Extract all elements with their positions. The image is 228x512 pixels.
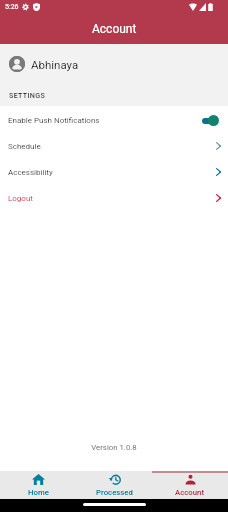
- staticText: Abhinaya: [31, 58, 79, 71]
- staticText: Schedule: [8, 142, 41, 151]
- button[interactable]: Enable Push Notifications: [0, 107, 228, 133]
- staticText: 5:26: [5, 3, 19, 11]
- staticText: SETTINGS: [9, 91, 46, 99]
- button[interactable]: Processed: [76, 471, 152, 499]
- button[interactable]: Abhinaya: [0, 44, 228, 84]
- staticText: Account: [175, 488, 205, 497]
- staticText: Version 1.0.8: [0, 443, 228, 452]
- staticText: Account: [92, 22, 137, 36]
- staticText: Enable Push Notifications: [8, 116, 100, 125]
- button[interactable]: Accessibility: [0, 159, 228, 185]
- staticText: Home: [28, 488, 49, 497]
- button[interactable]: Account: [152, 471, 228, 499]
- staticText: Processed: [96, 488, 133, 497]
- button[interactable]: Schedule: [0, 133, 228, 159]
- staticText: Accessibility: [8, 168, 53, 177]
- staticText: Logout: [8, 194, 33, 203]
- button[interactable]: Home: [0, 471, 76, 499]
- button[interactable]: Logout: [0, 185, 228, 211]
